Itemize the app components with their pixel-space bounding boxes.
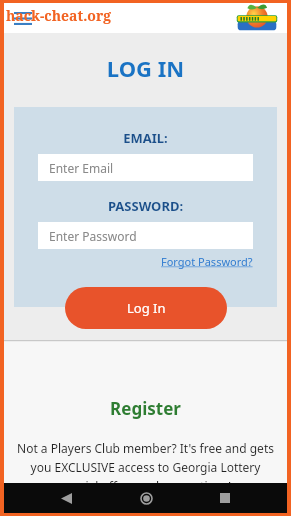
button[interactable]: Georgia Lottery logo bbox=[234, 4, 280, 32]
button[interactable]: Forgot Password? bbox=[161, 254, 253, 269]
button[interactable]: Home bbox=[129, 483, 163, 513]
staticText: EMAIL: bbox=[14, 129, 277, 147]
button[interactable]: Enter Email bbox=[38, 154, 253, 181]
button[interactable]: Log In bbox=[65, 287, 227, 329]
staticText: LOG IN bbox=[4, 53, 287, 83]
staticText: hack-cheat.org bbox=[6, 6, 112, 25]
staticText: Log In bbox=[127, 299, 166, 317]
staticText: Not a Players Club member? It's free and… bbox=[16, 440, 275, 483]
staticText: Enter Email bbox=[49, 160, 114, 176]
button[interactable]: Recent apps bbox=[208, 483, 242, 513]
button[interactable]: Back bbox=[49, 483, 83, 513]
button[interactable]: Enter Password bbox=[38, 222, 253, 249]
staticText: Register bbox=[4, 397, 287, 420]
staticText: Enter Password bbox=[49, 228, 137, 244]
button[interactable]: Menu bbox=[10, 5, 36, 31]
staticText: PASSWORD: bbox=[14, 197, 277, 215]
staticText: Forgot Password? bbox=[161, 254, 253, 269]
